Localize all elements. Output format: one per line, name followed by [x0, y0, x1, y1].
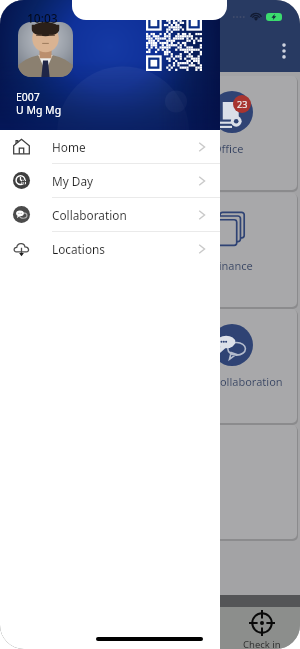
button[interactable]: Locations: [0, 232, 220, 265]
button[interactable]: [202, 425, 297, 539]
staticText: Check in: [243, 638, 281, 649]
staticText: Collaboration: [52, 207, 127, 223]
button[interactable]: More options: [282, 44, 286, 58]
staticText: Collaboration: [213, 374, 283, 389]
staticText: U Mg Mg: [16, 103, 62, 117]
staticText: 23: [237, 98, 248, 110]
button[interactable]: Collaboration: [0, 198, 220, 231]
button[interactable]: My Day: [0, 164, 220, 197]
staticText: Home: [52, 139, 86, 155]
staticText: Finance: [213, 258, 253, 273]
staticText: My Day: [52, 173, 94, 189]
button[interactable]: Collaboration: [202, 309, 297, 423]
staticText: 10:03: [27, 10, 58, 26]
staticText: Office: [213, 141, 244, 156]
button[interactable]: Finance: [202, 193, 297, 307]
button[interactable]: Check in: [224, 610, 300, 649]
button[interactable]: 23: [202, 76, 297, 190]
button[interactable]: Home: [0, 130, 220, 163]
staticText: E007: [16, 90, 40, 104]
staticText: Locations: [52, 241, 105, 257]
